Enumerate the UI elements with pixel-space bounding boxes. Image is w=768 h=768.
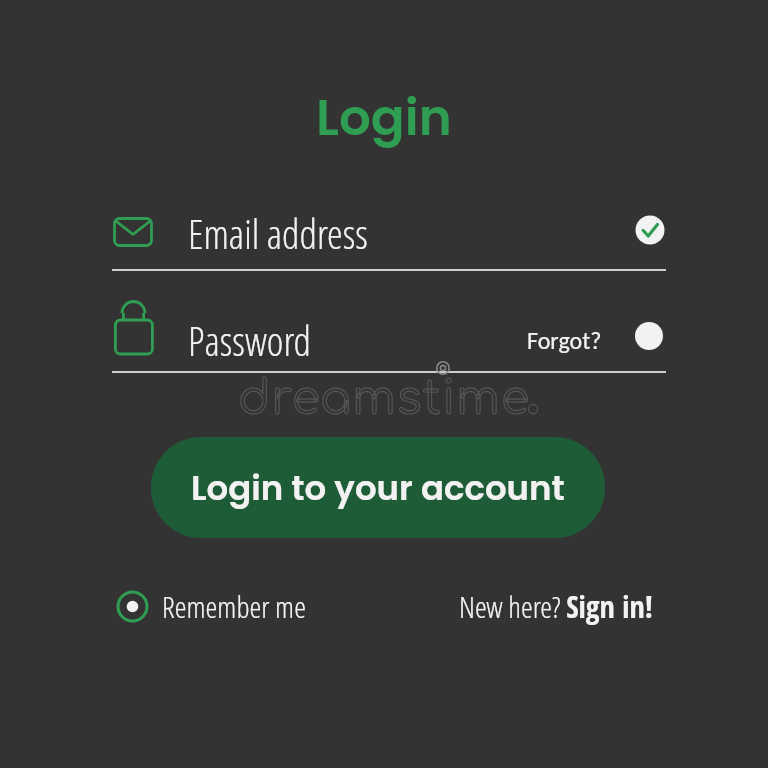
staticText: Forgot? (527, 326, 602, 355)
button[interactable] (112, 585, 372, 629)
staticText: Remember me (162, 586, 306, 627)
button[interactable]: Login to your account (151, 437, 605, 538)
button[interactable] (635, 322, 663, 350)
button[interactable]: New here? Sign in! (459, 566, 768, 646)
staticText: dreamstime (238, 373, 531, 424)
staticText: Login (316, 83, 452, 149)
staticText: New here? Sign in! (459, 586, 653, 627)
button[interactable]: Forgot? (527, 300, 768, 380)
button[interactable] (635, 215, 665, 245)
staticText: Password (188, 313, 312, 367)
staticText: Email address (188, 206, 368, 260)
staticText: Login to your account (191, 464, 565, 512)
